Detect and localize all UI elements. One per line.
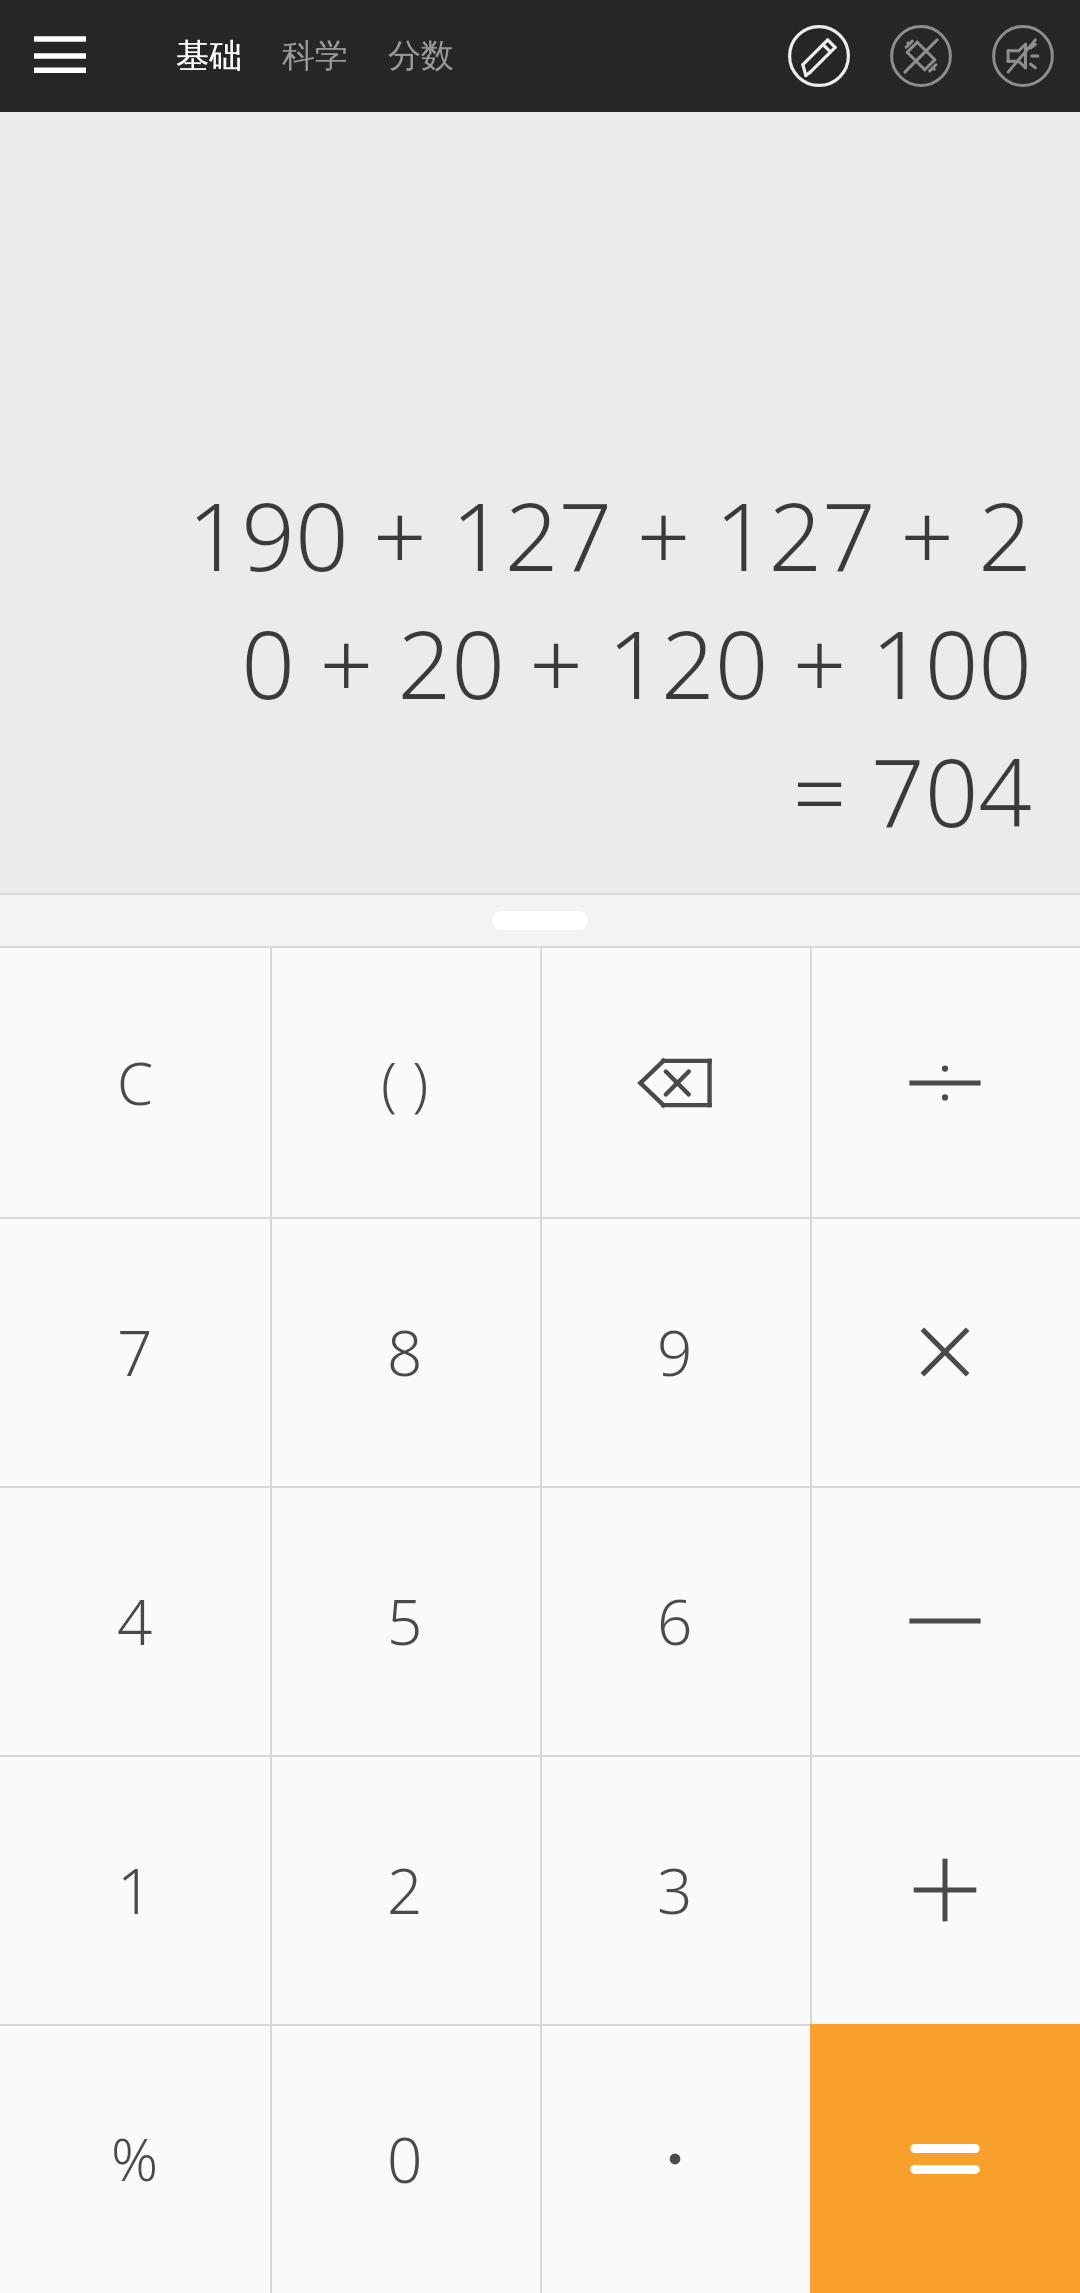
button[interactable]: 5 [270, 1486, 540, 1755]
button[interactable]: 0 [270, 2024, 540, 2293]
button[interactable]: 190 + 127 + 127 + 2 [0, 112, 1080, 893]
button[interactable]: 4 [0, 1486, 270, 1755]
button[interactable]: Backspace [540, 948, 810, 1217]
staticText: 分数 [388, 35, 454, 77]
button[interactable]: ( ) [270, 948, 540, 1217]
staticText: 2 [387, 1848, 423, 1932]
staticText: 9 [657, 1310, 693, 1394]
button[interactable]: % [0, 2024, 270, 2293]
button[interactable]: Equals [810, 2024, 1080, 2293]
staticText: ( ) [381, 1043, 429, 1122]
staticText: 0 + 20 + 120 + 100 [241, 599, 1032, 727]
button[interactable]: 基础 [170, 27, 248, 85]
button[interactable]: Sound off [986, 19, 1060, 93]
staticText: 5 [387, 1579, 423, 1663]
staticText: 4 [117, 1579, 153, 1663]
button[interactable]: Multiply [810, 1217, 1080, 1486]
button[interactable]: Vibration off [884, 19, 958, 93]
staticText: 基础 [176, 35, 242, 77]
staticText: C [117, 1043, 154, 1122]
staticText: 科学 [282, 35, 348, 77]
staticText: = 704 [792, 727, 1032, 855]
button[interactable]: Plus [810, 1755, 1080, 2024]
button[interactable]: Divide [810, 948, 1080, 1217]
button[interactable]: 分数 [382, 27, 460, 85]
staticText: 6 [657, 1579, 693, 1663]
button[interactable]: 1 [0, 1755, 270, 2024]
button[interactable]: Decimal point [540, 2024, 810, 2293]
button[interactable]: 7 [0, 1217, 270, 1486]
button[interactable]: C [0, 948, 270, 1217]
staticText: 8 [387, 1310, 423, 1394]
button[interactable]: 科学 [276, 27, 354, 85]
staticText: % [111, 2119, 159, 2198]
button[interactable]: 9 [540, 1217, 810, 1486]
staticText: 3 [657, 1848, 693, 1932]
staticText: 190 + 127 + 127 + 2 [187, 471, 1032, 599]
staticText: 7 [117, 1310, 153, 1394]
button[interactable]: Resize display [0, 893, 1080, 948]
staticText: 1 [117, 1848, 153, 1932]
button[interactable]: 2 [270, 1755, 540, 2024]
staticText: 0 [387, 2117, 423, 2201]
button[interactable]: 3 [540, 1755, 810, 2024]
button[interactable]: Menu [22, 18, 98, 94]
button[interactable]: 6 [540, 1486, 810, 1755]
button[interactable]: Minus [810, 1486, 1080, 1755]
button[interactable]: Edit [782, 19, 856, 93]
button[interactable]: 8 [270, 1217, 540, 1486]
